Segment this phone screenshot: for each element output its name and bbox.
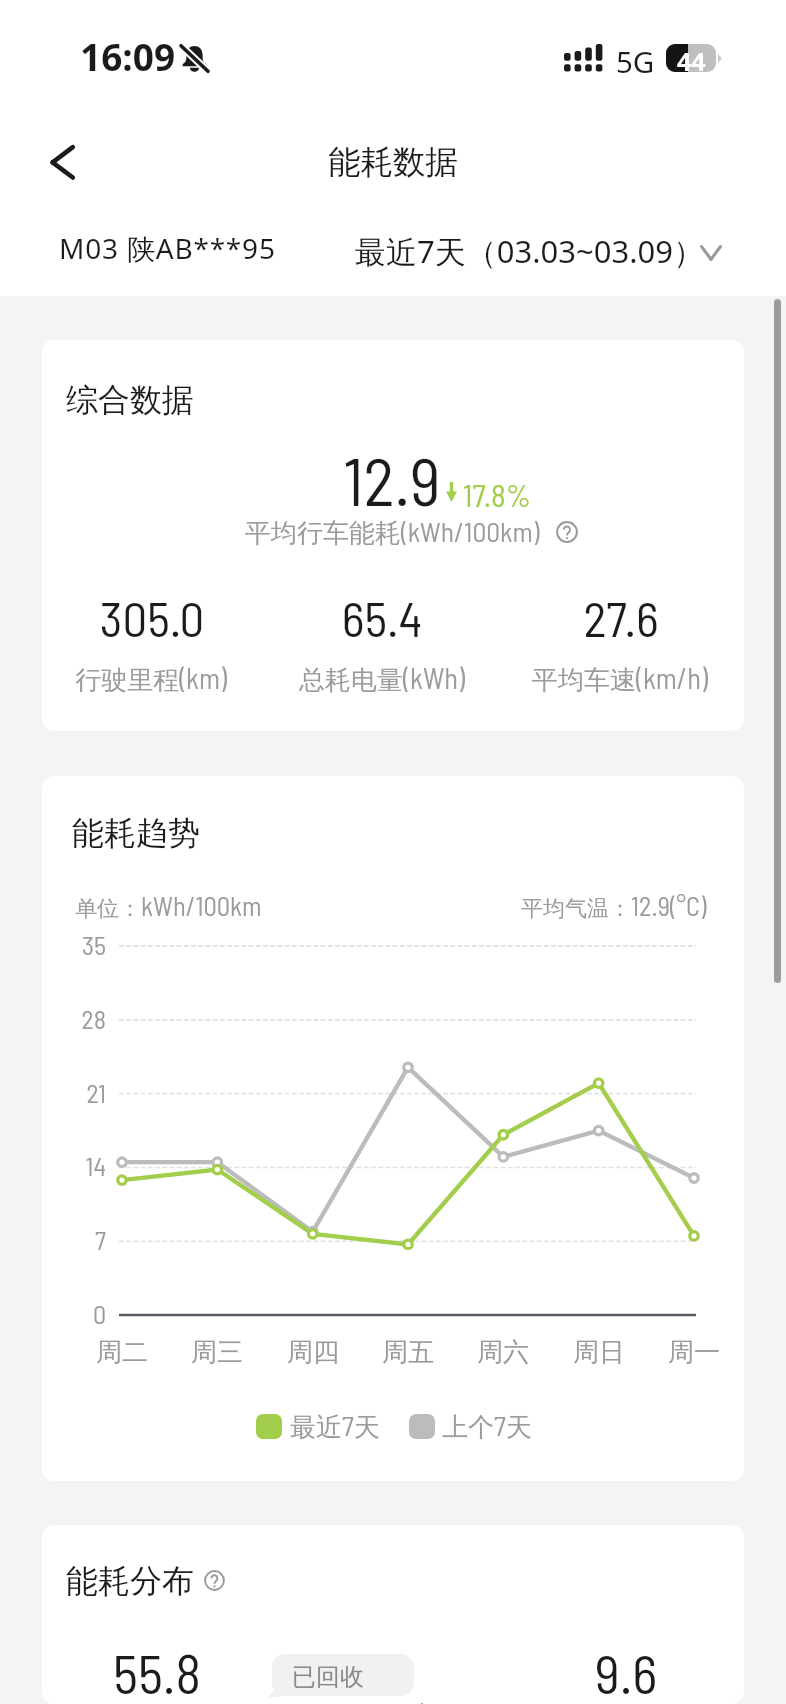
staticText: 能耗趋势 [72,813,200,853]
staticText: 9.6 [516,1640,736,1704]
staticText: 12.9 [272,440,512,519]
staticText: 平均车速(km/h) [500,660,740,696]
staticText: 周三 [167,1336,267,1369]
button[interactable]: 最近7天（03.03~03.09） [344,214,734,284]
staticText: 周六 [453,1336,553,1369]
staticText: 5G [616,41,655,81]
staticText: 平均气温：12.9(°C) [521,889,707,922]
staticText: 28 [42,1003,106,1034]
staticText: 单位：kWh/100km [75,889,262,922]
staticText: 44 [677,44,706,72]
staticText: 综合数据 [66,380,194,420]
staticText: 周日 [549,1336,649,1369]
staticText: 21 [42,1077,106,1108]
staticText: 17.8% [463,476,532,513]
staticText: 周二 [72,1336,172,1369]
staticText: 最近7天 [290,1408,380,1444]
staticText: 已回收 [292,1662,364,1692]
staticText: M03 陕AB***95 [59,229,276,267]
staticText: 总耗电量(kWh) [262,660,502,696]
staticText: 上个7天 [442,1408,532,1444]
staticText: 周四 [263,1336,363,1369]
staticText: 周一 [644,1336,744,1369]
staticText: 65.4 [272,588,492,647]
staticText: 16:09 [80,31,176,81]
staticText: 35 [42,929,106,960]
staticText: 7 [42,1224,106,1255]
staticText: 14 [42,1150,106,1181]
staticText: 55.8 [47,1640,267,1704]
staticText: 8.7 已回收电量 [294,1697,461,1704]
staticText: 最近7天（03.03~03.09） [355,230,704,272]
staticText: 27.6 [511,588,731,647]
staticText: 周五 [358,1336,458,1369]
staticText: 能耗分布 [66,1561,194,1601]
staticText: 305.0 [42,588,262,647]
staticText: 平均行车能耗(kWh/100km) [245,514,540,549]
button[interactable]: Back [33,132,93,192]
staticText: 能耗数据 [328,142,458,183]
staticText: 行驶里程(km) [42,660,271,696]
staticText: 0 [42,1298,106,1329]
